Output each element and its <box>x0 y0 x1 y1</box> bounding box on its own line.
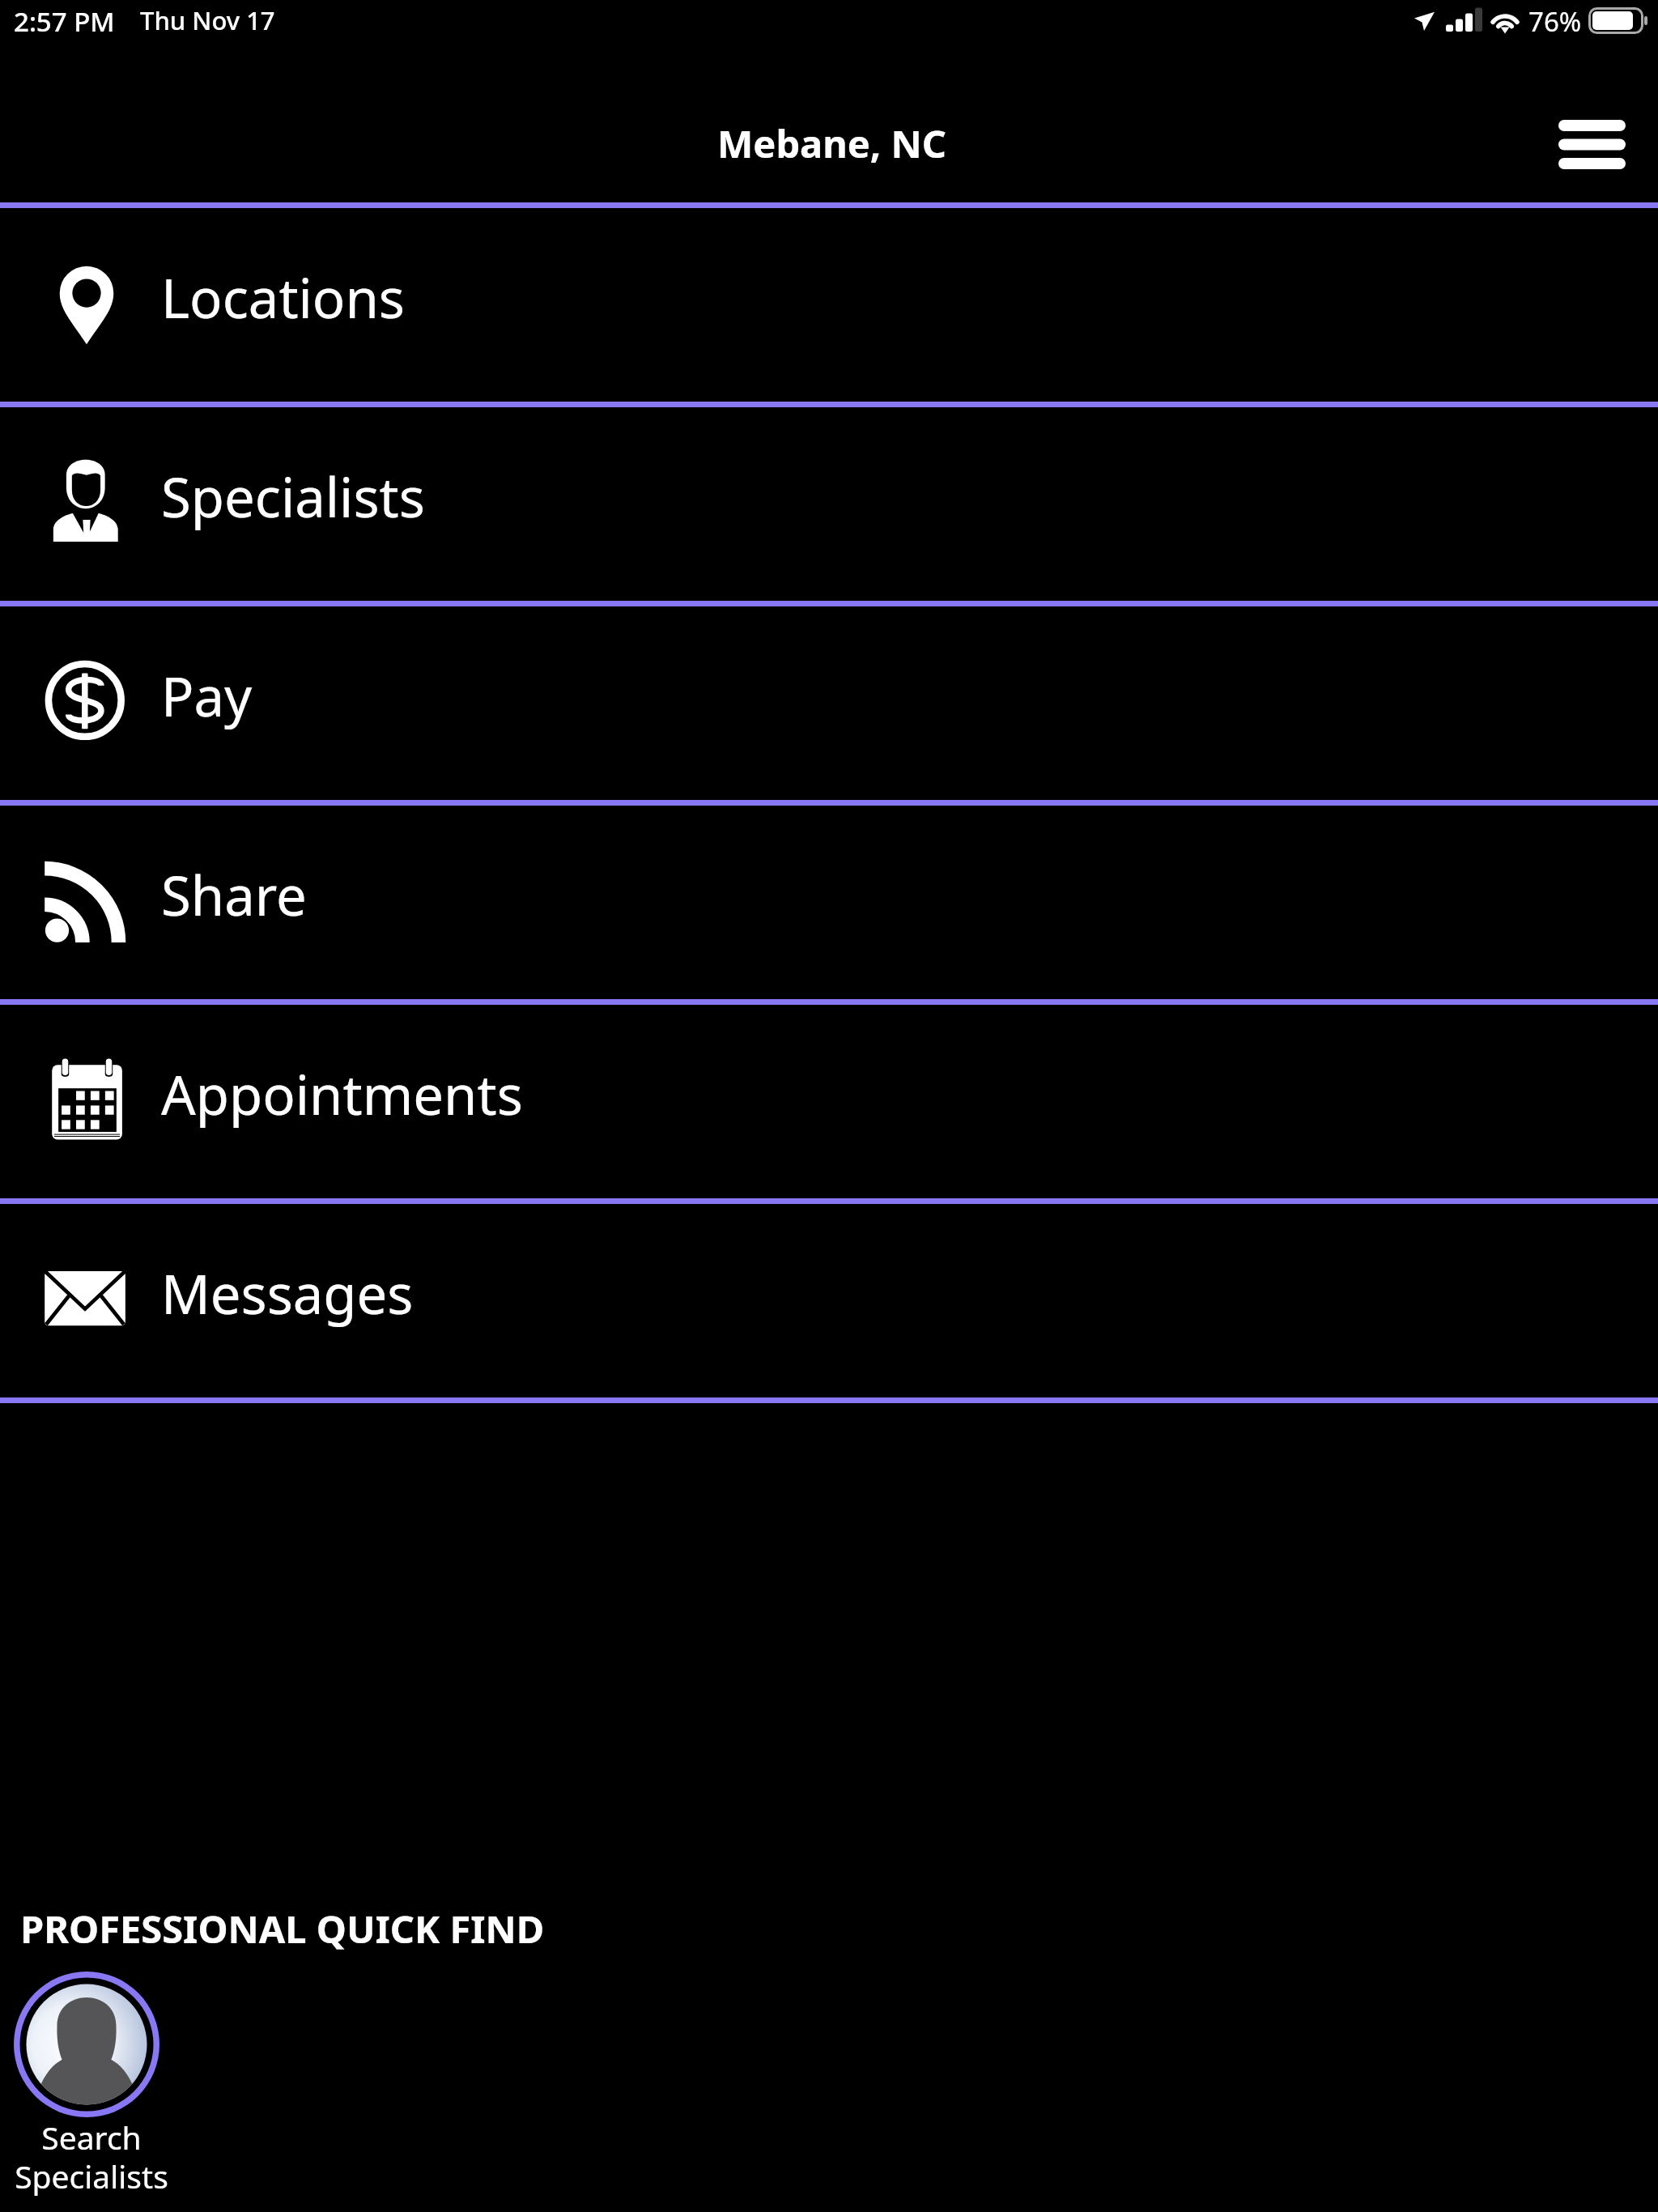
staticText: Pay <box>161 658 253 732</box>
button[interactable]: Appointments <box>0 1005 1658 1198</box>
button[interactable]: Share <box>0 806 1658 999</box>
staticText: Thu Nov 17 <box>140 3 275 37</box>
staticText: PROFESSIONAL QUICK FIND <box>20 1903 545 1955</box>
button[interactable]: Specialists <box>0 407 1658 601</box>
button[interactable]: Menu <box>1530 100 1658 189</box>
staticText: Locations <box>161 260 405 334</box>
staticText: 76% <box>1528 3 1582 40</box>
staticText: Specialists <box>0 2155 183 2197</box>
staticText: Messages <box>161 1256 414 1329</box>
button[interactable]: Search <box>0 1967 183 2212</box>
button[interactable]: Locations <box>0 208 1658 402</box>
button[interactable]: Messages <box>0 1204 1658 1397</box>
staticText: Search <box>0 2116 183 2159</box>
staticText: Share <box>161 857 307 931</box>
button[interactable]: Pay <box>0 606 1658 800</box>
staticText: Specialists <box>161 459 425 533</box>
staticText: 2:57 PM <box>14 3 115 40</box>
staticText: Appointments <box>161 1057 523 1130</box>
staticText: Mebane, NC <box>717 117 946 169</box>
